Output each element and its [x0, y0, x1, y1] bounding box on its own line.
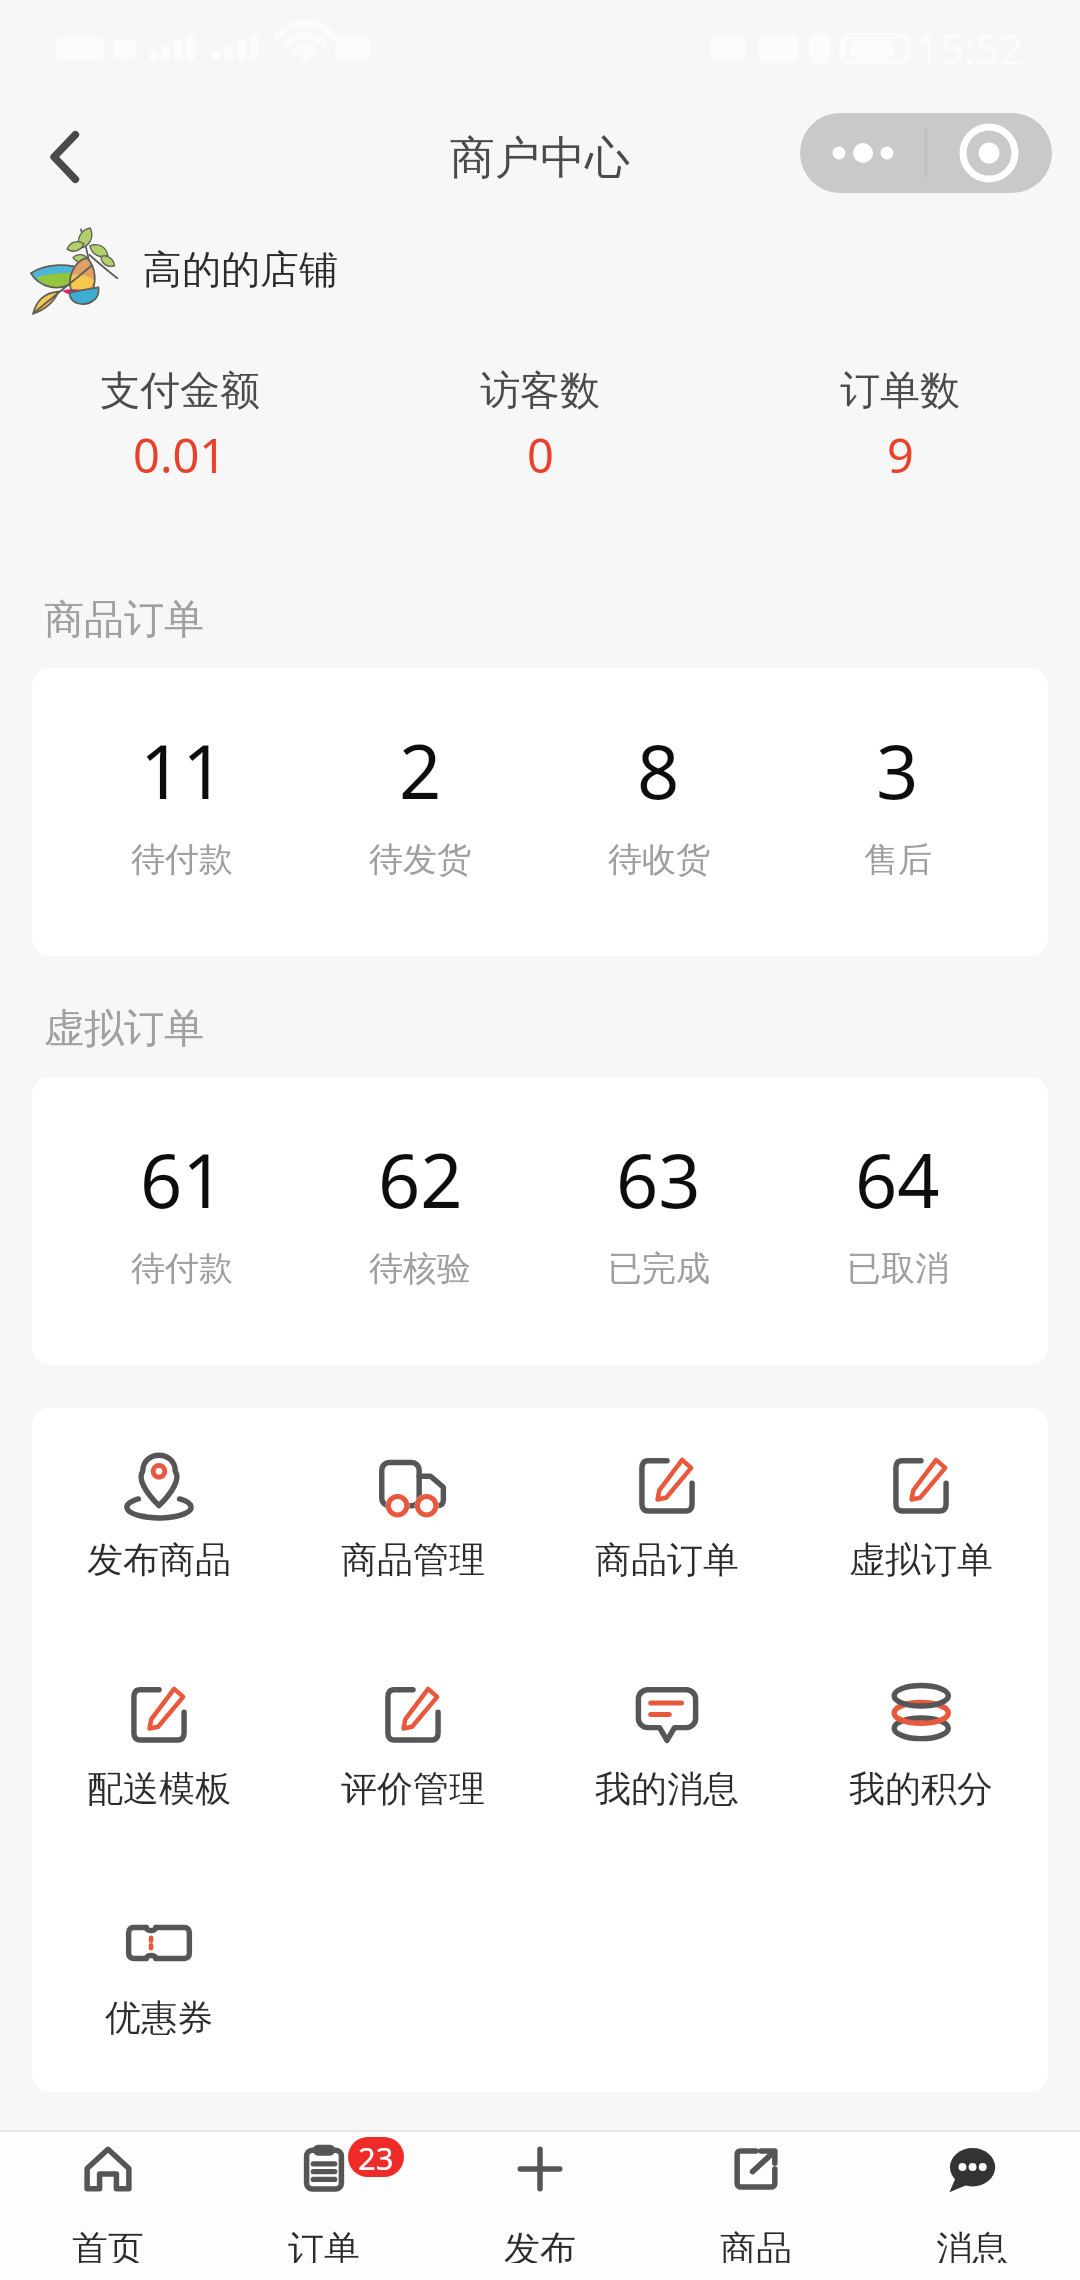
- staticText: 0: [527, 423, 554, 487]
- button[interactable]: 商品订单: [540, 1441, 794, 1670]
- staticText: 我的积分: [849, 1766, 993, 1811]
- staticText: 待收货: [608, 838, 710, 881]
- staticText: 已取消: [847, 1247, 949, 1290]
- staticText: 62: [378, 1129, 463, 1230]
- staticText: 虚拟订单: [849, 1537, 993, 1582]
- button[interactable]: 63: [539, 1129, 778, 1290]
- staticText: 订单: [288, 2226, 360, 2263]
- staticText: 商品订单: [595, 1537, 739, 1582]
- staticText: 64: [855, 1129, 940, 1230]
- button[interactable]: Back: [23, 115, 107, 199]
- staticText: 发布商品: [87, 1537, 231, 1582]
- staticText: 9: [887, 423, 914, 487]
- staticText: 首页: [72, 2226, 144, 2263]
- staticText: 消息: [936, 2226, 1008, 2263]
- staticText: 访客数: [480, 365, 600, 415]
- button[interactable]: More options: [800, 113, 926, 193]
- staticText: 虚拟订单: [44, 1003, 204, 1053]
- staticText: 配送模板: [87, 1766, 231, 1811]
- button[interactable]: 我的积分: [794, 1670, 1048, 1899]
- staticText: 订单数: [840, 365, 960, 415]
- staticText: 63: [616, 1129, 701, 1230]
- button[interactable]: 3: [778, 720, 1017, 881]
- staticText: 发布: [504, 2226, 576, 2263]
- button[interactable]: 发布商品: [32, 1441, 286, 1670]
- button[interactable]: 11: [63, 720, 301, 881]
- button[interactable]: 支付金额: [0, 359, 360, 493]
- staticText: 商品管理: [341, 1537, 485, 1582]
- staticText: 待付款: [131, 838, 233, 881]
- button[interactable]: 2: [301, 720, 539, 881]
- button[interactable]: 高的的店铺: [29, 219, 1080, 319]
- button[interactable]: 发布: [432, 2132, 648, 2280]
- staticText: 商户中心: [450, 130, 630, 187]
- staticText: 评价管理: [341, 1766, 485, 1811]
- button[interactable]: 我的消息: [540, 1670, 794, 1899]
- button[interactable]: 23: [216, 2132, 432, 2280]
- button[interactable]: 优惠券: [32, 1899, 286, 2092]
- button[interactable]: 虚拟订单: [794, 1441, 1048, 1670]
- staticText: 0.01: [133, 423, 227, 487]
- staticText: 23: [358, 2137, 394, 2177]
- button[interactable]: 评价管理: [286, 1670, 540, 1899]
- staticText: 优惠券: [105, 1995, 213, 2040]
- button[interactable]: 商品: [648, 2132, 864, 2280]
- staticText: 61: [140, 1129, 225, 1230]
- button[interactable]: 订单数: [720, 359, 1080, 493]
- button[interactable]: 64: [778, 1129, 1017, 1290]
- staticText: 待核验: [369, 1247, 471, 1290]
- staticText: 已完成: [608, 1247, 710, 1290]
- staticText: 待发货: [369, 838, 471, 881]
- button[interactable]: 消息: [864, 2132, 1080, 2280]
- button[interactable]: Close mini program: [926, 113, 1052, 193]
- button[interactable]: 62: [301, 1129, 539, 1290]
- button[interactable]: 访客数: [360, 359, 720, 493]
- staticText: 待付款: [131, 1247, 233, 1290]
- staticText: 3: [876, 720, 919, 821]
- staticText: 商品: [720, 2226, 792, 2263]
- staticText: 高的的店铺: [143, 245, 338, 294]
- button[interactable]: 配送模板: [32, 1670, 286, 1899]
- staticText: 2: [399, 720, 442, 821]
- button[interactable]: 61: [63, 1129, 301, 1290]
- button[interactable]: 商品管理: [286, 1441, 540, 1670]
- staticText: 11: [140, 720, 225, 821]
- staticText: 8: [637, 720, 680, 821]
- staticText: 我的消息: [595, 1766, 739, 1811]
- button[interactable]: 首页: [0, 2132, 216, 2280]
- button[interactable]: 8: [539, 720, 778, 881]
- staticText: 售后: [864, 838, 932, 881]
- staticText: 支付金额: [100, 365, 260, 415]
- staticText: 商品订单: [44, 594, 204, 644]
